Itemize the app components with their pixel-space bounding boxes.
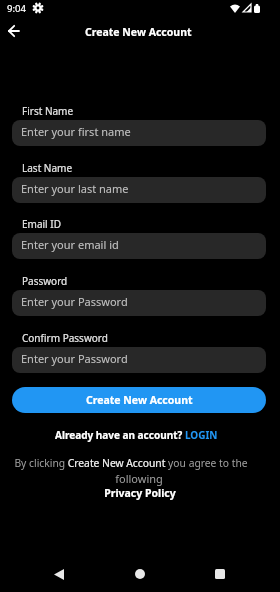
button[interactable]: Enter your first name [12, 120, 266, 146]
staticText: Email ID [22, 217, 61, 231]
staticText: Enter your Password [21, 294, 128, 309]
staticText: following [0, 471, 278, 486]
button[interactable] [208, 562, 232, 586]
staticText: By clicking Create New Account you agree… [0, 456, 262, 470]
staticText: 9:04 [7, 2, 26, 15]
button[interactable] [128, 562, 152, 586]
staticText: First Name [22, 104, 74, 118]
staticText: Enter your email id [21, 237, 119, 252]
staticText: Enter your last name [21, 181, 129, 196]
button[interactable]: Enter your last name [12, 177, 266, 203]
staticText: Enter your Password [21, 351, 128, 366]
button[interactable]: Create New Account [12, 387, 266, 413]
button[interactable]: Already have an account? LOGIN [0, 428, 272, 442]
button[interactable]: Privacy Policy [0, 486, 280, 500]
button[interactable] [47, 562, 71, 586]
staticText: Create New Account [85, 25, 192, 39]
button[interactable] [2, 19, 26, 43]
staticText: Already have an account? LOGIN [55, 428, 218, 442]
button[interactable]: Enter your Password [12, 290, 266, 316]
button[interactable]: Enter your email id [12, 233, 266, 259]
staticText: Last Name [22, 161, 73, 175]
staticText: Enter your first name [21, 124, 131, 139]
staticText: Create New Account [86, 393, 193, 407]
button[interactable]: Enter your Password [12, 347, 266, 373]
staticText: Confirm Password [22, 331, 108, 345]
staticText: Password [22, 274, 68, 288]
